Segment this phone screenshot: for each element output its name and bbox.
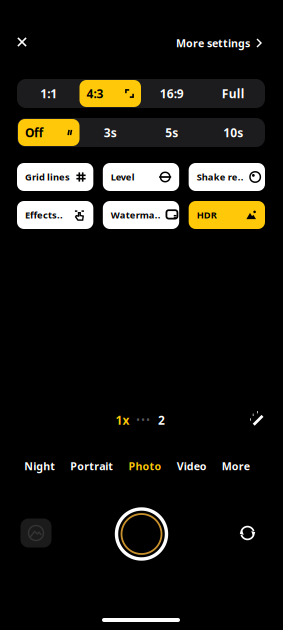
staticText: Night xyxy=(24,459,55,473)
button[interactable]: Level xyxy=(103,163,179,191)
staticText: 10s xyxy=(223,124,243,140)
button[interactable]: 1x xyxy=(114,411,130,429)
button[interactable]: HDR xyxy=(189,201,265,229)
button[interactable]: Video xyxy=(172,453,212,479)
staticText: • • • xyxy=(136,415,149,425)
button[interactable]: 5s xyxy=(141,119,202,146)
staticText: More settings xyxy=(176,36,250,50)
button[interactable]: Shutter xyxy=(114,507,168,561)
button[interactable]: 3s xyxy=(79,119,141,146)
button[interactable]: Night xyxy=(19,453,60,479)
staticText: Off xyxy=(25,124,43,140)
button[interactable]: Grid lines xyxy=(17,163,93,191)
staticText: 1:1 xyxy=(40,85,57,101)
button[interactable]: Close xyxy=(8,28,36,56)
staticText: 5s xyxy=(165,124,178,140)
button[interactable]: Enhance xyxy=(244,406,270,432)
staticText: 3s xyxy=(104,124,117,140)
staticText: Full xyxy=(222,85,245,101)
button[interactable]: Gallery xyxy=(20,518,51,547)
staticText: More xyxy=(222,459,250,473)
staticText: 4:3 xyxy=(86,85,103,101)
staticText: Photo xyxy=(128,459,161,473)
button[interactable]: Flip camera xyxy=(232,518,262,548)
button[interactable]: 10s xyxy=(202,119,264,146)
staticText: 16:9 xyxy=(160,85,184,101)
button[interactable]: 4:3 xyxy=(79,80,141,107)
button[interactable]: More settings xyxy=(176,29,262,57)
staticText: HDR xyxy=(197,209,217,221)
staticText: 2 xyxy=(158,412,165,428)
button[interactable]: 1:1 xyxy=(18,80,79,107)
button[interactable]: Photo xyxy=(123,453,166,479)
staticText: Shake re.. xyxy=(197,171,244,183)
button[interactable]: 2 xyxy=(155,411,167,429)
button[interactable]: Shake re.. xyxy=(189,163,265,191)
button[interactable]: Full xyxy=(202,80,264,107)
button[interactable]: Effects.. xyxy=(17,201,93,229)
staticText: Level xyxy=(111,171,135,183)
staticText: Waterma.. xyxy=(111,209,161,221)
button[interactable]: Waterma.. xyxy=(103,201,179,229)
button[interactable]: 16:9 xyxy=(141,80,202,107)
button[interactable]: Off xyxy=(18,119,79,146)
staticText: 1x xyxy=(115,412,129,428)
staticText: Effects.. xyxy=(25,209,63,221)
staticText: Portrait xyxy=(70,459,113,473)
staticText: Grid lines xyxy=(25,171,70,183)
button[interactable]: More xyxy=(217,453,255,479)
button[interactable]: Portrait xyxy=(65,453,118,479)
staticText: Video xyxy=(177,459,207,473)
